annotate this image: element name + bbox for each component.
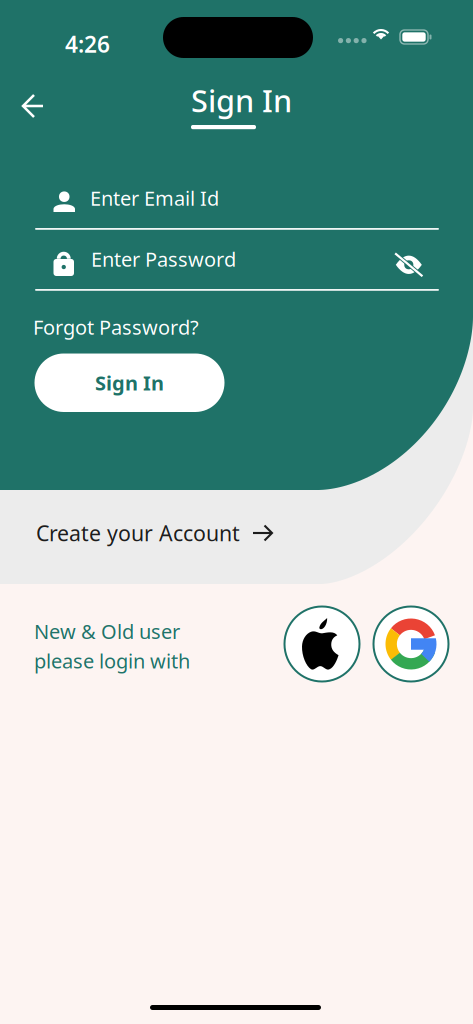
button[interactable]: Sign In — [34, 353, 224, 412]
staticText: please login with — [34, 648, 190, 674]
staticText: Enter Password — [91, 246, 236, 272]
button[interactable]: Enter Password — [35, 238, 439, 291]
button[interactable]: Enter Email Id — [35, 177, 439, 230]
button[interactable]: Sign in with Apple — [283, 605, 361, 683]
staticText: New & Old user — [34, 618, 180, 645]
staticText: Sign In — [191, 80, 292, 121]
staticText: Forgot Password? — [33, 314, 199, 340]
staticText: Enter Email Id — [90, 185, 219, 211]
staticText: Sign In — [95, 369, 164, 396]
staticText: 4:26 — [65, 29, 110, 59]
button[interactable]: Sign in with Google — [372, 605, 450, 683]
staticText: Create your Account — [36, 519, 240, 547]
button[interactable]: Show password — [388, 244, 430, 286]
button[interactable]: Forgot Password? — [33, 311, 213, 343]
button[interactable]: Create your Account — [36, 513, 281, 553]
button[interactable]: Back — [11, 83, 55, 129]
